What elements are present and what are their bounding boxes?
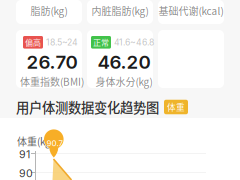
staticText: 脂肪(kg) — [30, 3, 67, 18]
button[interactable]: 正常 — [87, 30, 153, 88]
staticText: 41.6~46.8 — [114, 37, 154, 47]
staticText: 内脏脂肪(kg) — [91, 3, 148, 18]
staticText: 90 — [19, 167, 33, 180]
staticText: 体重指数(BMI) — [20, 74, 84, 89]
staticText: 用户体测数据变化趋势图 — [16, 97, 159, 117]
staticText: 体重 — [167, 101, 185, 113]
staticText: 正常 — [93, 36, 109, 48]
staticText: 体重(kg) — [17, 134, 54, 148]
staticText: 90.7 — [46, 138, 63, 148]
staticText: 18.5~24 — [46, 37, 78, 47]
staticText: 46.20 — [97, 51, 150, 73]
staticText: 偏高 — [25, 36, 41, 48]
button[interactable]: 脂肪(kg) — [16, 0, 82, 24]
staticText: 26.70 — [26, 51, 77, 73]
button[interactable]: 基础代谢(kcal) — [158, 0, 224, 24]
staticText: 基础代谢(kcal) — [158, 3, 223, 18]
staticText: 身体水分(kg) — [95, 74, 152, 89]
staticText: 91 — [19, 148, 30, 161]
button[interactable]: 内脏脂肪(kg) — [87, 0, 153, 24]
button[interactable]: 偏高 — [16, 30, 82, 88]
